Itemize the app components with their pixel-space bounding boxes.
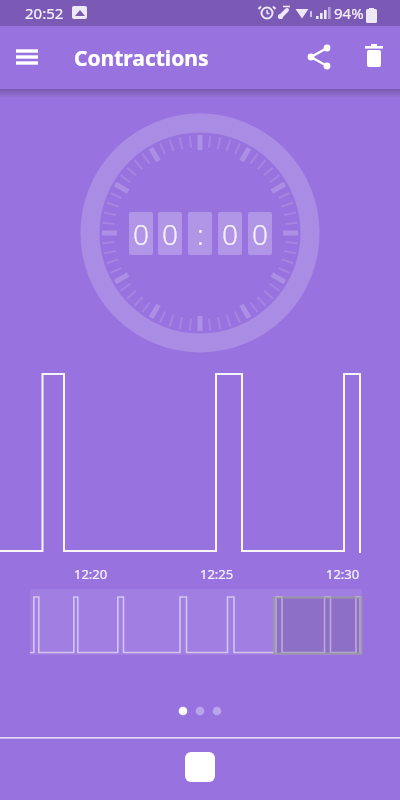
staticText: 0 <box>162 215 178 253</box>
staticText: 0 <box>133 215 149 253</box>
button[interactable] <box>358 41 390 73</box>
button[interactable] <box>13 43 41 71</box>
button[interactable] <box>303 41 335 73</box>
button[interactable] <box>185 752 215 782</box>
staticText: Contractions <box>74 44 209 73</box>
staticText: 20:52 <box>25 3 64 23</box>
staticText: 12:25 <box>200 565 234 583</box>
staticText: 0 <box>222 215 238 253</box>
staticText: 0 <box>252 215 268 253</box>
staticText: : <box>197 215 204 253</box>
staticText: 12:30 <box>326 565 360 583</box>
staticText: 94% <box>334 3 364 23</box>
staticText: 12:20 <box>74 565 108 583</box>
